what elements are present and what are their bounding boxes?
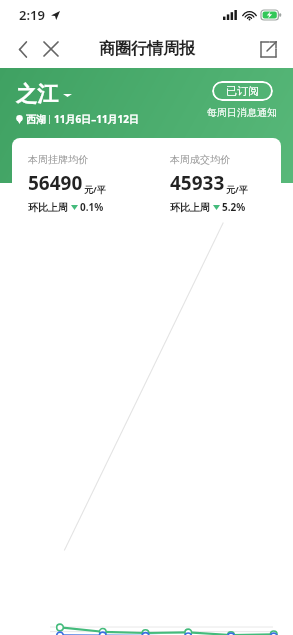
staticText: 商圈行情周报 (99, 39, 195, 59)
button[interactable]: Share (253, 34, 283, 64)
staticText: 每周日消息通知 (207, 106, 277, 119)
staticText: 元/平 (84, 183, 106, 195)
staticText: 56490 (28, 170, 83, 196)
staticText: 环比上周 (170, 201, 210, 214)
staticText: 本周成交均价 (170, 153, 230, 166)
staticText: 已订阅 (226, 84, 259, 98)
button[interactable]: 本周挂牌均价 (12, 138, 281, 635)
button[interactable]: Close (36, 34, 66, 64)
staticText: 45933 (170, 170, 225, 196)
staticText: 元/平 (226, 183, 248, 195)
button[interactable]: 已订阅 (212, 81, 273, 101)
button[interactable]: 之江 (16, 81, 72, 107)
staticText: 5.2% (222, 200, 246, 214)
staticText: 西湖 (26, 113, 46, 126)
staticText: 0.1% (80, 200, 104, 214)
staticText: 2:19 (19, 6, 45, 24)
staticText: 11月6日–11月12日 (54, 112, 140, 126)
staticText: 之江 (16, 81, 58, 107)
staticText: 本周挂牌均价 (28, 153, 88, 166)
button[interactable]: Back (8, 34, 38, 64)
staticText: 环比上周 (28, 201, 68, 214)
